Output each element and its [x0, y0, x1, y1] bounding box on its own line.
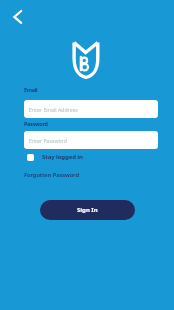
button[interactable] — [8, 7, 26, 25]
staticText: Enter Password — [29, 137, 67, 144]
staticText: Sign In — [77, 206, 98, 214]
staticText: Stay logged in — [42, 153, 83, 161]
staticText: Password — [24, 120, 48, 127]
staticText: Email — [24, 86, 38, 93]
staticText: Enter Email Address — [29, 106, 78, 113]
button[interactable]: Enter Password — [24, 131, 158, 149]
button[interactable]: Forgotten Password — [24, 171, 79, 179]
button[interactable]: Stay logged in — [27, 153, 83, 161]
button[interactable]: Enter Email Address — [24, 100, 158, 118]
button[interactable]: Sign In — [40, 200, 135, 220]
